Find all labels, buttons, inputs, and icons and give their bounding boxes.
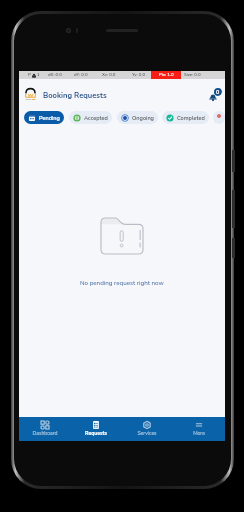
staticText: 0 <box>216 88 220 96</box>
button[interactable]: Cancelled <box>213 111 225 124</box>
staticText: Accepted <box>84 114 108 122</box>
staticText: Completed <box>177 114 205 122</box>
button[interactable]: Completed <box>162 111 209 124</box>
button[interactable]: Accepted <box>69 111 112 124</box>
staticText: Xv: 0.0 <box>102 72 132 78</box>
staticText: Services <box>137 430 157 437</box>
staticText: P <box>28 72 31 78</box>
staticText: Requests <box>85 430 107 437</box>
staticText: Size: 0.0 <box>184 72 201 78</box>
staticText: dY: 0.0 <box>74 72 102 78</box>
staticText: More <box>193 430 205 437</box>
staticText: dX: 0.0 <box>48 72 74 78</box>
button[interactable]: Ongoing <box>117 111 158 124</box>
button[interactable]: Dashboard <box>19 417 70 441</box>
button[interactable]: Requests <box>70 417 121 441</box>
staticText: Yv: 0.0 <box>132 72 151 78</box>
staticText: Dashboard <box>32 430 58 437</box>
button[interactable]: More <box>173 417 225 441</box>
button[interactable]: Pending <box>24 111 64 124</box>
staticText: Pix: 1.0 <box>159 72 174 78</box>
button[interactable]: Services <box>121 417 173 441</box>
staticText: Booking Requests <box>43 90 107 100</box>
button[interactable]: Notifications <box>204 86 222 104</box>
staticText: No pending request right now <box>80 279 164 287</box>
staticText: 1 <box>37 72 40 78</box>
staticText: Pending <box>39 114 60 122</box>
staticText: Ongoing <box>132 114 154 122</box>
